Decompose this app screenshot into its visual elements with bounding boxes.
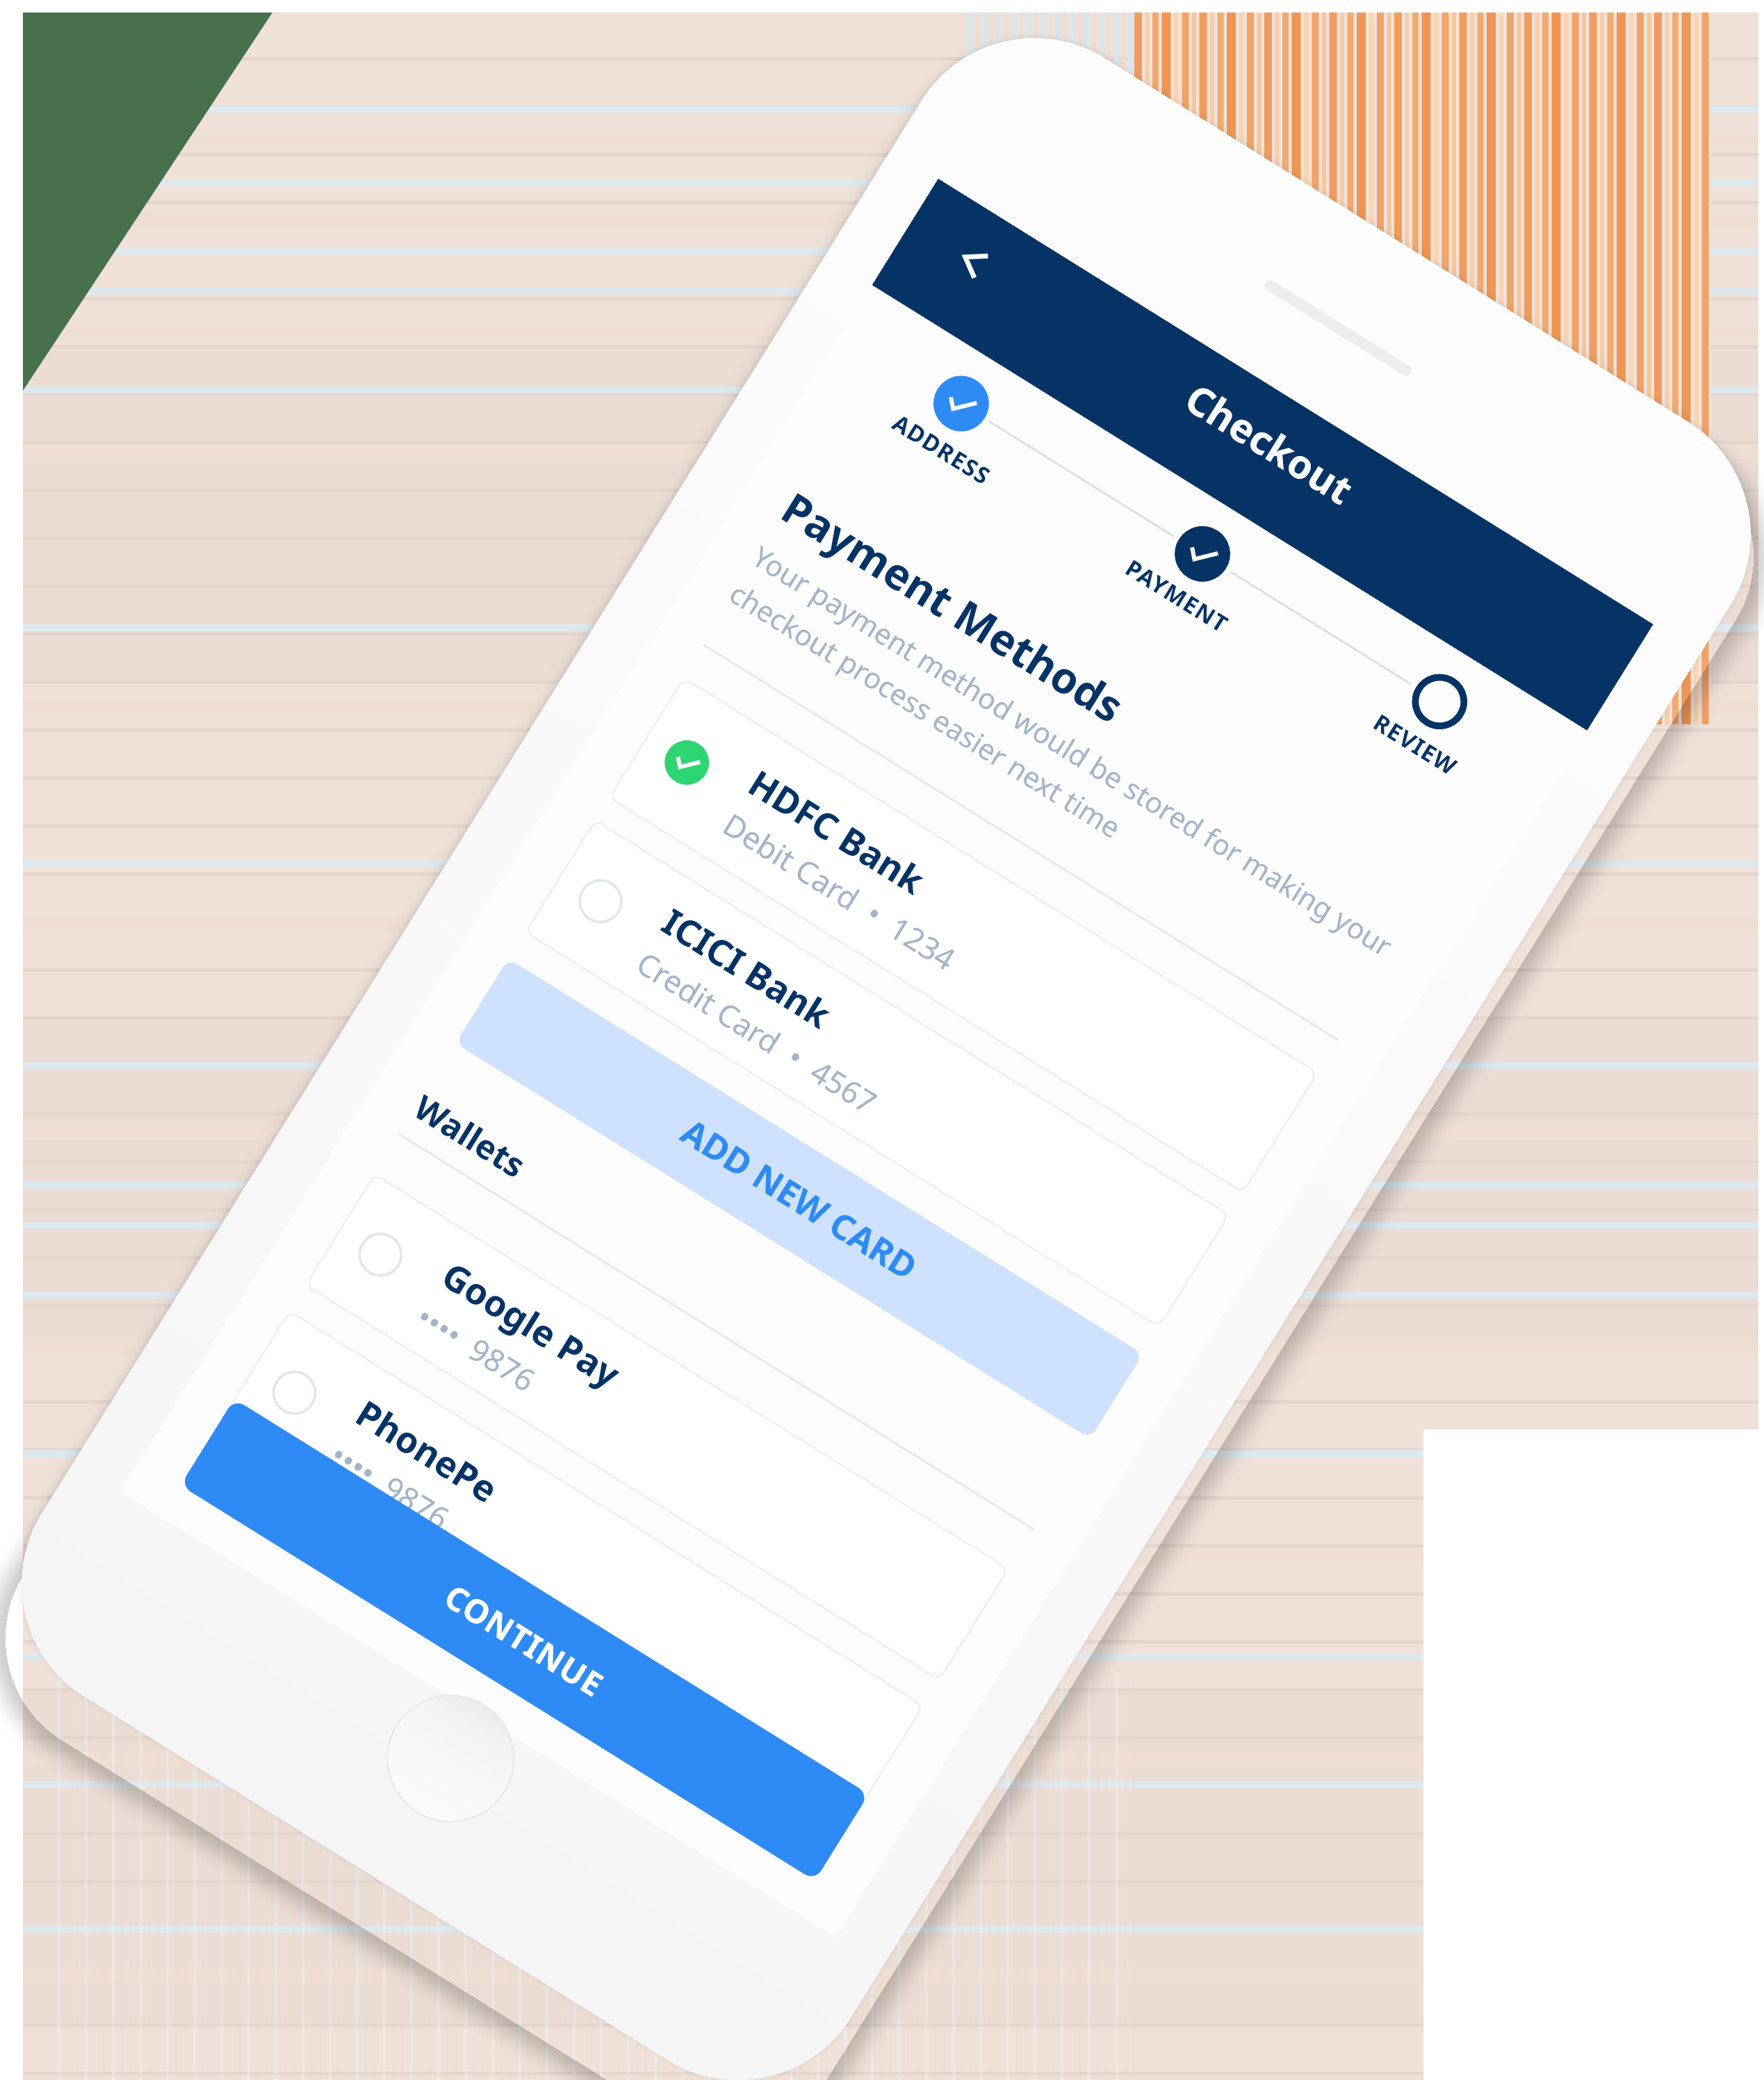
- staticText: Google Pay: [433, 1250, 630, 1398]
- button[interactable]: HDFC Bank: [608, 677, 1318, 1193]
- button[interactable]: Review step: [1401, 663, 1478, 740]
- staticText: Your payment method would be stored for …: [723, 537, 1413, 1009]
- button[interactable]: ADD NEW CARD: [455, 958, 1143, 1439]
- button[interactable]: Google Pay: [305, 1173, 1009, 1681]
- staticText: PhonePe: [347, 1388, 507, 1513]
- staticText: Checkout: [1176, 371, 1364, 516]
- staticText: REVIEW: [1325, 680, 1506, 809]
- staticText: ICICI Bank: [654, 896, 841, 1039]
- button[interactable]: CONTINUE: [180, 1399, 869, 1881]
- button[interactable]: Completed step: [1164, 516, 1241, 592]
- button[interactable]: Completed step: [923, 365, 999, 442]
- staticText: ADDRESS: [851, 384, 1033, 514]
- button[interactable]: ICICI Bank: [524, 819, 1230, 1328]
- staticText: HDFC Bank: [740, 758, 935, 905]
- button[interactable]: Back: [925, 214, 1021, 310]
- staticText: •••• 9876: [409, 1295, 543, 1401]
- staticText: •••• 9876: [323, 1433, 457, 1539]
- staticText: Wallets: [406, 1084, 534, 1188]
- staticText: Payment Methods: [772, 478, 1135, 735]
- staticText: ADD NEW CARD: [673, 1108, 926, 1290]
- staticText: Debit Card • 1234: [716, 803, 964, 979]
- staticText: CONTINUE: [436, 1574, 613, 1707]
- staticText: Credit Card • 4567: [629, 942, 885, 1123]
- staticText: PAYMENT: [1086, 531, 1268, 661]
- button[interactable]: PhonePe: [218, 1310, 924, 1821]
